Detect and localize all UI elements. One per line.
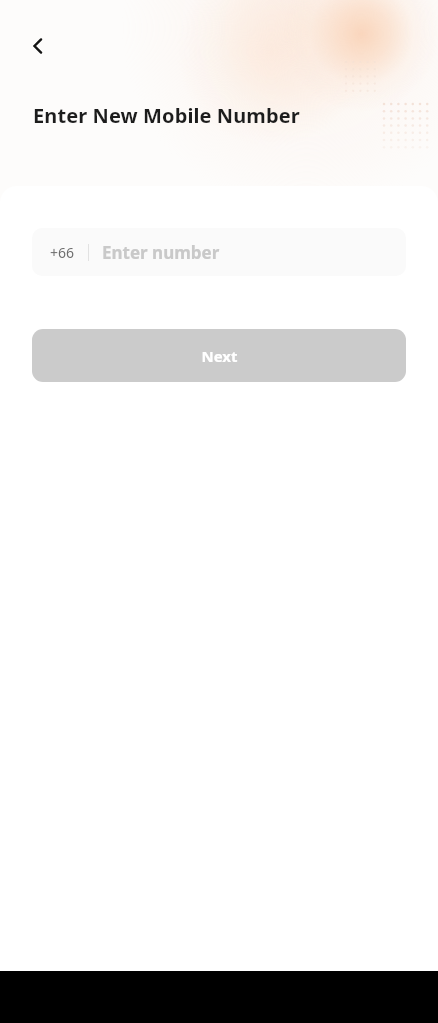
button[interactable]: +66 bbox=[32, 228, 406, 276]
staticText: Next bbox=[201, 346, 238, 366]
button[interactable]: Back bbox=[18, 26, 58, 66]
button[interactable]: Next bbox=[32, 329, 406, 382]
staticText: +66 bbox=[50, 243, 75, 262]
staticText: Enter number bbox=[102, 241, 220, 264]
staticText: Enter New Mobile Number bbox=[33, 102, 300, 129]
